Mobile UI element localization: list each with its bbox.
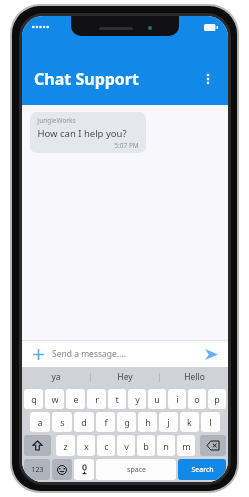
- button[interactable]: m: [177, 435, 195, 456]
- button[interactable]: y: [128, 389, 146, 409]
- button[interactable]: Hello: [160, 367, 228, 387]
- button[interactable]: space: [96, 459, 176, 480]
- staticText: y: [135, 393, 140, 405]
- staticText: o: [194, 393, 200, 405]
- staticText: 5:07 PM: [114, 141, 139, 150]
- button[interactable]: u: [148, 389, 166, 409]
- staticText: g: [124, 416, 130, 428]
- staticText: a: [37, 416, 43, 428]
- staticText: f: [104, 416, 108, 428]
- staticText: l: [209, 416, 212, 428]
- button[interactable]: s: [52, 412, 72, 432]
- button[interactable]: Hey: [91, 367, 159, 387]
- button[interactable]: a: [30, 412, 50, 432]
- staticText: Hey: [117, 371, 133, 383]
- staticText: t: [115, 393, 119, 405]
- staticText: n: [163, 440, 169, 452]
- staticText: v: [124, 440, 129, 452]
- button[interactable]: i: [168, 389, 186, 409]
- button[interactable]: 123: [24, 459, 50, 480]
- staticText: Search: [191, 465, 214, 475]
- staticText: j: [167, 416, 170, 428]
- staticText: i: [176, 393, 179, 405]
- staticText: k: [187, 416, 192, 428]
- staticText: m: [182, 440, 191, 452]
- staticText: w: [51, 393, 59, 405]
- staticText: e: [73, 393, 79, 405]
- button[interactable]: n: [157, 435, 175, 456]
- button[interactable]: o: [188, 389, 206, 409]
- button[interactable]: f: [96, 412, 115, 432]
- button[interactable]: c: [97, 435, 115, 456]
- staticText: JungleWorks: [37, 116, 76, 125]
- staticText: p: [214, 393, 220, 405]
- button[interactable]: b: [137, 435, 155, 456]
- button[interactable]: r: [87, 389, 106, 409]
- staticText: u: [154, 393, 160, 405]
- staticText: q: [31, 393, 37, 405]
- button[interactable]: d: [74, 412, 94, 432]
- staticText: c: [104, 440, 109, 452]
- button[interactable]: JungleWorks: [30, 112, 146, 153]
- staticText: Send a message....: [52, 348, 126, 360]
- button[interactable]: z: [56, 435, 75, 456]
- button[interactable]: Voice input: [74, 459, 94, 480]
- button[interactable]: e: [66, 389, 85, 409]
- button[interactable]: Send: [201, 344, 221, 364]
- button[interactable]: q: [24, 389, 43, 409]
- staticText: Chat Support: [34, 68, 139, 90]
- button[interactable]: k: [180, 412, 199, 432]
- staticText: ya: [51, 371, 61, 383]
- button[interactable]: ya: [22, 367, 90, 387]
- staticText: x: [84, 440, 89, 452]
- button[interactable]: l: [201, 412, 220, 432]
- button[interactable]: Backspace: [200, 435, 226, 456]
- button[interactable]: Emoji: [52, 459, 72, 480]
- staticText: h: [145, 416, 151, 428]
- button[interactable]: h: [138, 412, 157, 432]
- button[interactable]: Add attachment: [29, 345, 47, 363]
- staticText: r: [95, 393, 99, 405]
- staticText: d: [81, 416, 87, 428]
- staticText: Hello: [184, 371, 205, 383]
- staticText: b: [143, 440, 149, 452]
- staticText: space: [127, 465, 146, 475]
- button[interactable]: t: [108, 389, 126, 409]
- button[interactable]: g: [117, 412, 136, 432]
- button[interactable]: x: [77, 435, 95, 456]
- button[interactable]: p: [208, 389, 226, 409]
- button[interactable]: Search: [178, 459, 226, 480]
- button[interactable]: v: [117, 435, 135, 456]
- staticText: s: [60, 416, 65, 428]
- button[interactable]: Shift: [24, 435, 51, 456]
- staticText: How can I help you?: [37, 127, 127, 140]
- button[interactable]: j: [159, 412, 178, 432]
- staticText: z: [63, 440, 68, 452]
- button[interactable]: w: [45, 389, 64, 409]
- staticText: 123: [31, 465, 44, 475]
- button[interactable]: More options: [194, 65, 222, 93]
